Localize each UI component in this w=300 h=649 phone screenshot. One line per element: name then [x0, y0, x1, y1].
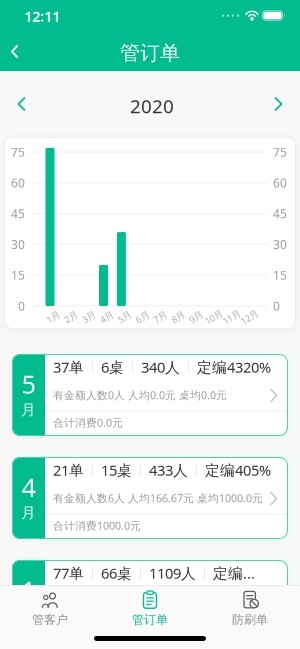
staticText: 0 — [273, 298, 280, 314]
staticText: 3月 — [82, 311, 96, 323]
staticText: 管订单 — [120, 41, 180, 65]
staticText: 75 — [273, 144, 287, 160]
staticText: 月 — [21, 607, 36, 625]
staticText: 11月 — [222, 311, 241, 323]
button[interactable]: 1 — [12, 560, 288, 642]
staticText: 60 — [273, 175, 287, 191]
staticText: 15桌 — [101, 460, 132, 480]
staticText: 6桌 — [101, 357, 124, 377]
staticText: 15 — [11, 267, 25, 283]
button[interactable]: Previous year — [0, 71, 44, 137]
staticText: 433人 — [149, 460, 188, 480]
button[interactable]: 管订单 — [100, 591, 200, 627]
staticText: 45 — [273, 206, 287, 221]
staticText: 防刷单 — [232, 612, 268, 627]
button[interactable]: 4 — [12, 457, 288, 539]
button[interactable]: 防刷单 — [200, 591, 300, 627]
staticText: 有金额人数0人 人均0.0元 桌均0.0元 — [53, 388, 227, 402]
staticText: 30 — [273, 236, 287, 252]
staticText: 66桌 — [101, 563, 132, 583]
staticText: 1109人 — [149, 563, 196, 583]
button[interactable]: 管客户 — [0, 591, 100, 627]
staticText: 77单 — [53, 563, 84, 583]
staticText: 4 — [21, 470, 35, 504]
staticText: 4月 — [100, 311, 114, 323]
staticText: 有金额人数6人 人均166.67元 桌均1000.0元 — [53, 491, 263, 505]
staticText: 合计消费1000.0元 — [53, 518, 141, 533]
staticText: 1 — [21, 573, 35, 607]
staticText: 9月 — [189, 311, 203, 323]
staticText: 0 — [18, 298, 25, 314]
staticText: 定编4320% — [197, 357, 271, 377]
staticText: 8月 — [171, 311, 185, 323]
staticText: 5 — [21, 367, 35, 401]
staticText: 管客户 — [32, 612, 68, 627]
button[interactable]: Next year — [256, 71, 300, 137]
staticText: 7月 — [153, 311, 167, 323]
staticText: 管订单 — [132, 612, 168, 627]
staticText: 10月 — [204, 311, 223, 323]
staticText: 月 — [21, 401, 36, 419]
staticText: 有金额人数0人 人均0.0元 桌均0.0元 — [53, 594, 227, 608]
staticText: 定编405% — [205, 460, 271, 480]
staticText: 21单 — [53, 460, 84, 480]
staticText: 合计消费0.0元 — [53, 415, 123, 430]
staticText: 2020 — [130, 94, 174, 118]
button[interactable]: Back — [0, 35, 34, 71]
staticText: 37单 — [53, 357, 84, 377]
staticText: 12月 — [240, 311, 259, 323]
staticText: 6月 — [135, 311, 149, 323]
staticText: 340人 — [141, 357, 180, 377]
staticText: 60 — [11, 175, 25, 191]
staticText: 5月 — [117, 311, 131, 323]
button[interactable]: 5 — [12, 354, 288, 436]
staticText: 定编... — [213, 563, 255, 583]
staticText: 合计消费0.0元 — [53, 621, 123, 636]
staticText: 75 — [11, 144, 25, 160]
staticText: 45 — [11, 206, 25, 221]
staticText: 2月 — [64, 311, 78, 323]
staticText: 月 — [21, 504, 36, 522]
staticText: 15 — [273, 267, 287, 283]
staticText: 30 — [11, 236, 25, 252]
staticText: 1月 — [46, 311, 60, 323]
staticText: 12:11 — [24, 6, 60, 26]
